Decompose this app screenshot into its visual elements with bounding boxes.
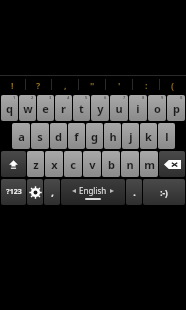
staticText: p <box>173 101 180 116</box>
staticText: d <box>55 129 62 144</box>
staticText: m <box>144 157 155 172</box>
staticText: o <box>154 101 161 116</box>
button[interactable]: :-) <box>143 179 185 205</box>
button[interactable]: v <box>83 151 101 177</box>
button[interactable]: u <box>110 95 128 121</box>
staticText: , <box>64 79 67 91</box>
button[interactable]: ?123 <box>1 179 26 205</box>
staticText: c <box>70 157 76 172</box>
button[interactable]: f <box>68 123 85 149</box>
staticText: ! <box>11 79 14 91</box>
staticText: 2 <box>31 95 34 100</box>
button[interactable]: w <box>19 95 36 121</box>
button[interactable]: a <box>12 123 30 149</box>
staticText: g <box>91 129 98 144</box>
staticText: English <box>79 185 107 196</box>
staticText: s <box>37 129 43 144</box>
button[interactable]: ? <box>26 76 51 93</box>
staticText: y <box>97 101 104 116</box>
staticText: . <box>133 186 136 198</box>
staticText: f <box>74 129 79 144</box>
button[interactable]: t <box>73 95 90 121</box>
button[interactable]: c <box>64 151 82 177</box>
button[interactable]: m <box>140 151 158 177</box>
staticText: ? <box>36 79 41 91</box>
staticText: u <box>115 101 123 116</box>
button[interactable]: y <box>91 95 109 121</box>
staticText: : <box>145 79 148 91</box>
button[interactable]: Shift <box>1 151 26 177</box>
staticText: a <box>18 129 25 144</box>
staticText: x <box>51 157 58 172</box>
button[interactable]: b <box>102 151 120 177</box>
button[interactable]: h <box>104 123 121 149</box>
button[interactable]: ! <box>0 76 25 93</box>
button[interactable]: ( <box>160 76 186 93</box>
button[interactable]: k <box>140 123 157 149</box>
button[interactable]: s <box>31 123 49 149</box>
staticText: z <box>33 157 39 172</box>
staticText: k <box>145 129 152 144</box>
staticText: ( <box>171 79 175 91</box>
staticText: b <box>108 157 115 172</box>
button[interactable]: e <box>37 95 54 121</box>
staticText: n <box>126 157 134 172</box>
button[interactable]: g <box>86 123 103 149</box>
staticText: , <box>51 186 54 198</box>
button[interactable]: " <box>79 76 105 93</box>
button[interactable]: d <box>50 123 67 149</box>
button[interactable]: n <box>121 151 139 177</box>
staticText: i <box>136 101 140 116</box>
staticText: 5 <box>85 95 88 100</box>
staticText: 9 <box>161 95 164 100</box>
staticText: 8 <box>142 95 145 100</box>
button[interactable]: . <box>126 179 142 205</box>
staticText: r <box>61 101 66 116</box>
button[interactable]: , <box>44 179 60 205</box>
button[interactable]: x <box>45 151 63 177</box>
staticText: 6 <box>104 95 107 100</box>
staticText: 0 <box>180 95 183 100</box>
staticText: 3 <box>49 95 52 100</box>
button[interactable]: j <box>122 123 139 149</box>
staticText: ?123 <box>6 187 22 197</box>
staticText: t <box>79 101 84 116</box>
staticText: l <box>165 129 169 144</box>
button[interactable]: l <box>158 123 175 149</box>
staticText: v <box>89 157 96 172</box>
button[interactable]: Settings <box>27 179 43 205</box>
button[interactable]: , <box>52 76 78 93</box>
staticText: 7 <box>123 95 126 100</box>
button[interactable]: Delete <box>159 151 185 177</box>
staticText: e <box>42 101 49 116</box>
staticText: :-) <box>160 187 168 198</box>
button[interactable]: r <box>55 95 72 121</box>
staticText: " <box>90 79 95 91</box>
button[interactable]: : <box>133 76 159 93</box>
button[interactable]: English <box>61 179 125 205</box>
button[interactable]: o <box>148 95 166 121</box>
button[interactable]: z <box>27 151 44 177</box>
staticText: q <box>6 101 13 116</box>
button[interactable]: p <box>167 95 185 121</box>
staticText: 4 <box>67 95 70 100</box>
staticText: w <box>23 101 33 116</box>
staticText: 1 <box>13 95 16 100</box>
staticText: j <box>129 129 133 144</box>
button[interactable]: ' <box>106 76 132 93</box>
staticText: h <box>109 129 117 144</box>
staticText: ' <box>118 79 121 91</box>
button[interactable]: i <box>129 95 147 121</box>
button[interactable]: q <box>1 95 18 121</box>
